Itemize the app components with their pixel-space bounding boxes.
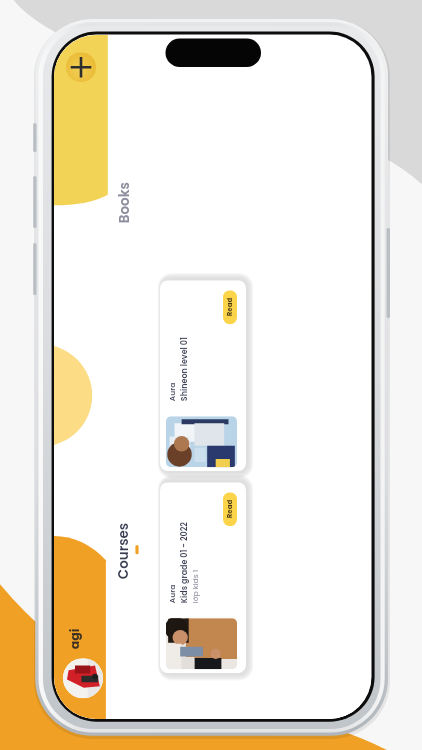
button[interactable]: Profile xyxy=(63,658,103,698)
button[interactable]: Add xyxy=(66,52,96,82)
staticText: Read xyxy=(225,297,235,316)
staticText: Books xyxy=(115,181,134,223)
staticText: Shineon level 01 xyxy=(179,337,190,401)
staticText: Read xyxy=(225,499,235,518)
button[interactable]: Read xyxy=(223,290,237,324)
button[interactable]: Courses xyxy=(114,522,133,579)
staticText: Aura xyxy=(167,382,177,401)
staticText: Kids grade 01 - 2022 xyxy=(179,521,190,603)
staticText: Aura xyxy=(167,584,177,603)
staticText: lớp kids 1 xyxy=(190,569,201,603)
button[interactable]: Aura xyxy=(160,280,246,471)
staticText: agi xyxy=(66,628,83,649)
button[interactable]: Read xyxy=(223,492,237,526)
button[interactable]: Books xyxy=(115,181,134,223)
staticText: Courses xyxy=(114,522,133,579)
button[interactable]: Aura xyxy=(160,482,246,673)
